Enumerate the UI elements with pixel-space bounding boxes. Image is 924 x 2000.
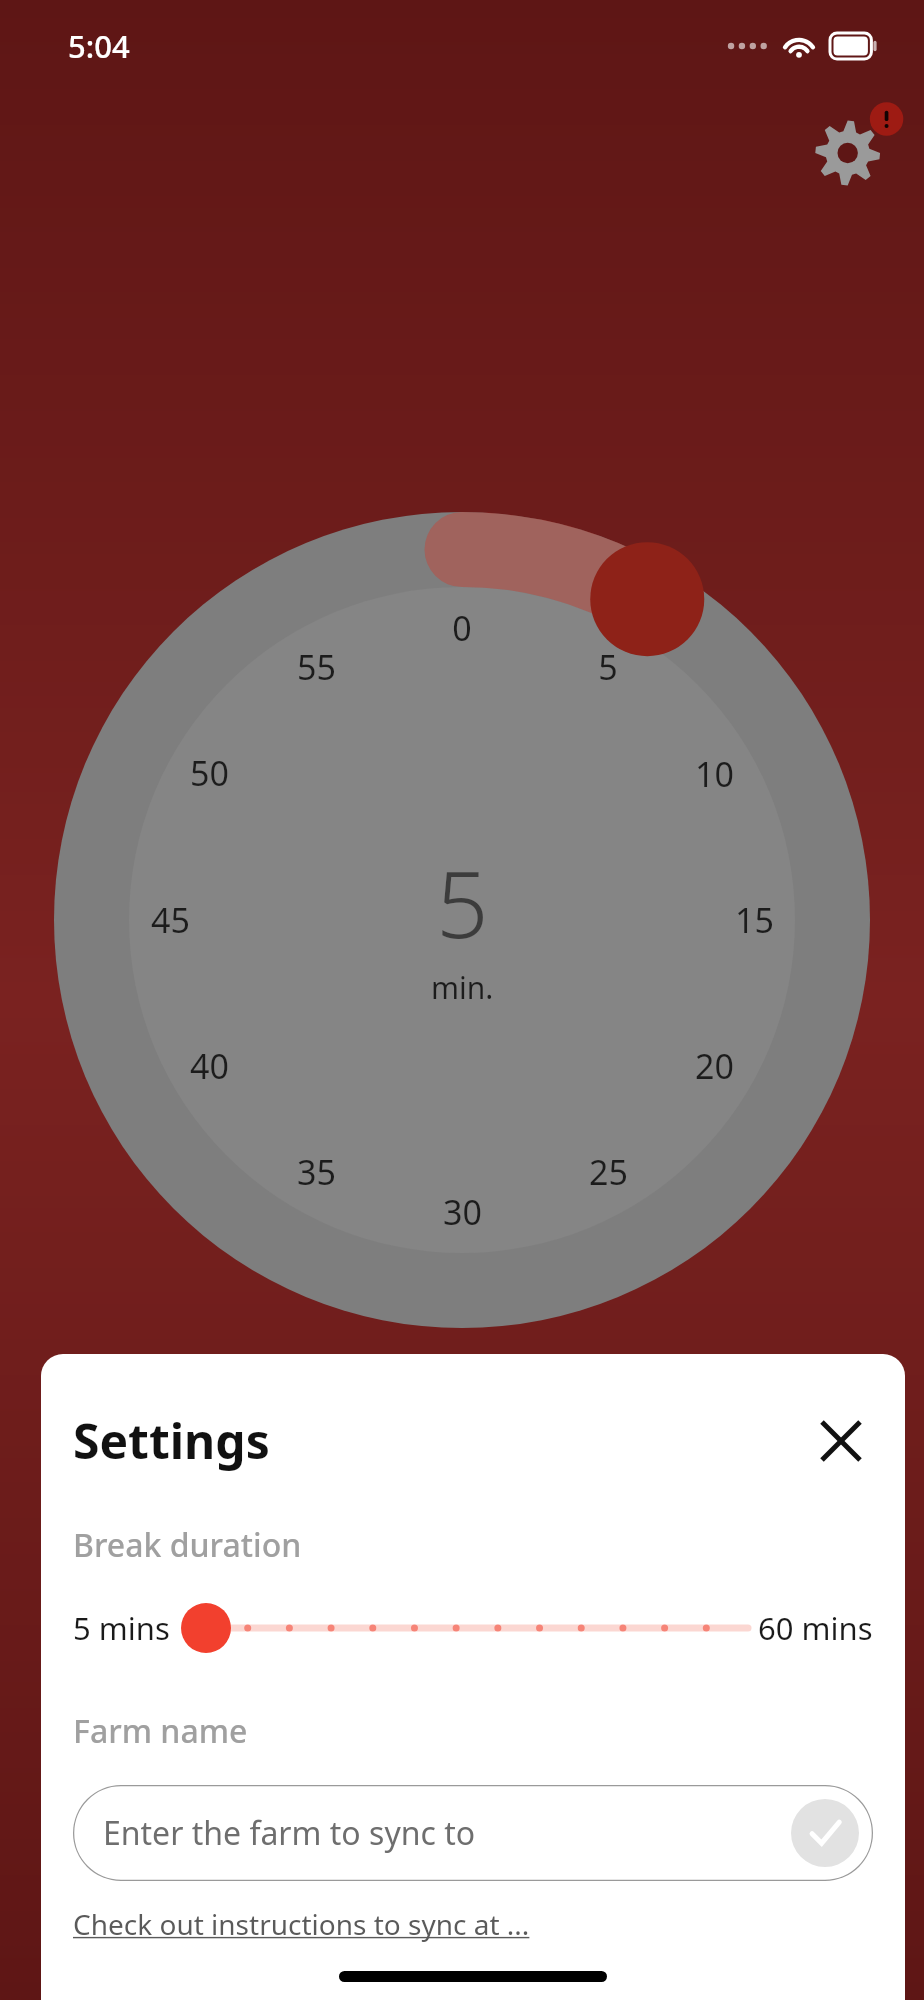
- staticText: min.: [431, 967, 494, 1008]
- button[interactable]: Confirm farm name: [791, 1799, 859, 1867]
- staticText: Farm name: [73, 1709, 248, 1753]
- staticText: 20: [695, 1043, 734, 1089]
- button[interactable]: Settings: [798, 95, 906, 195]
- staticText: 15: [735, 897, 774, 943]
- button[interactable]: Enter the farm to sync to: [73, 1785, 873, 1881]
- staticText: 45: [151, 897, 190, 943]
- staticText: Settings: [73, 1408, 270, 1473]
- staticText: 5 mins: [73, 1607, 170, 1649]
- staticText: Break duration: [73, 1523, 302, 1567]
- staticText: Check out instructions to sync at ...: [73, 1905, 530, 1943]
- staticText: 5: [436, 840, 489, 965]
- staticText: 55: [297, 644, 336, 690]
- button[interactable]: Close: [809, 1409, 873, 1473]
- staticText: 5:04: [68, 25, 130, 67]
- staticText: 25: [589, 1149, 628, 1195]
- staticText: Enter the farm to sync to: [103, 1811, 476, 1855]
- staticText: 35: [297, 1149, 336, 1195]
- staticText: 60 mins: [758, 1607, 873, 1649]
- button[interactable]: [180, 1593, 748, 1663]
- staticText: 0: [452, 605, 472, 651]
- button[interactable]: Check out instructions to sync at ...: [73, 1905, 530, 1943]
- staticText: 5: [598, 644, 618, 690]
- staticText: 10: [695, 751, 734, 797]
- staticText: 40: [190, 1043, 229, 1089]
- staticText: 30: [443, 1189, 482, 1235]
- staticText: 50: [190, 750, 229, 796]
